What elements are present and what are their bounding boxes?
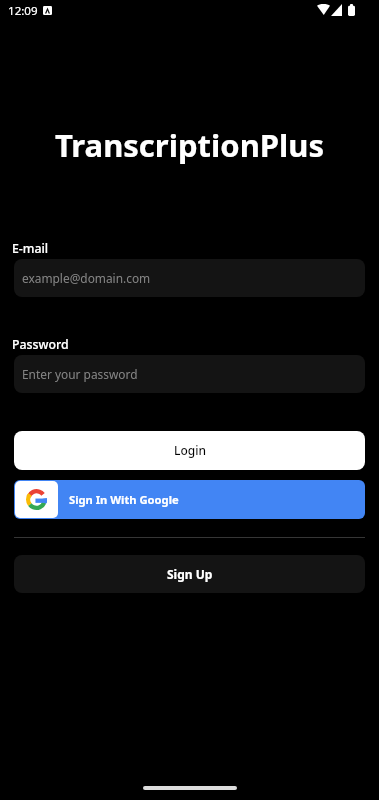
staticText: Password	[12, 336, 69, 353]
button[interactable]: example@domain.com	[14, 259, 365, 297]
staticText: Sign In With Google	[69, 492, 179, 507]
button[interactable]: Enter your password	[14, 355, 365, 393]
other: App notification	[43, 6, 52, 15]
staticText: example@domain.com	[22, 270, 151, 286]
staticText: 12:09	[8, 3, 38, 19]
staticText: Sign Up	[167, 566, 213, 582]
staticText: Login	[174, 442, 206, 458]
staticText: E-mail	[12, 240, 49, 257]
staticText: Enter your password	[22, 366, 138, 382]
staticText: TranscriptionPlus	[0, 124, 379, 166]
button[interactable]: Login	[14, 431, 365, 470]
button[interactable]: Sign Up	[14, 555, 365, 593]
button[interactable]: Sign In With Google	[14, 480, 365, 519]
